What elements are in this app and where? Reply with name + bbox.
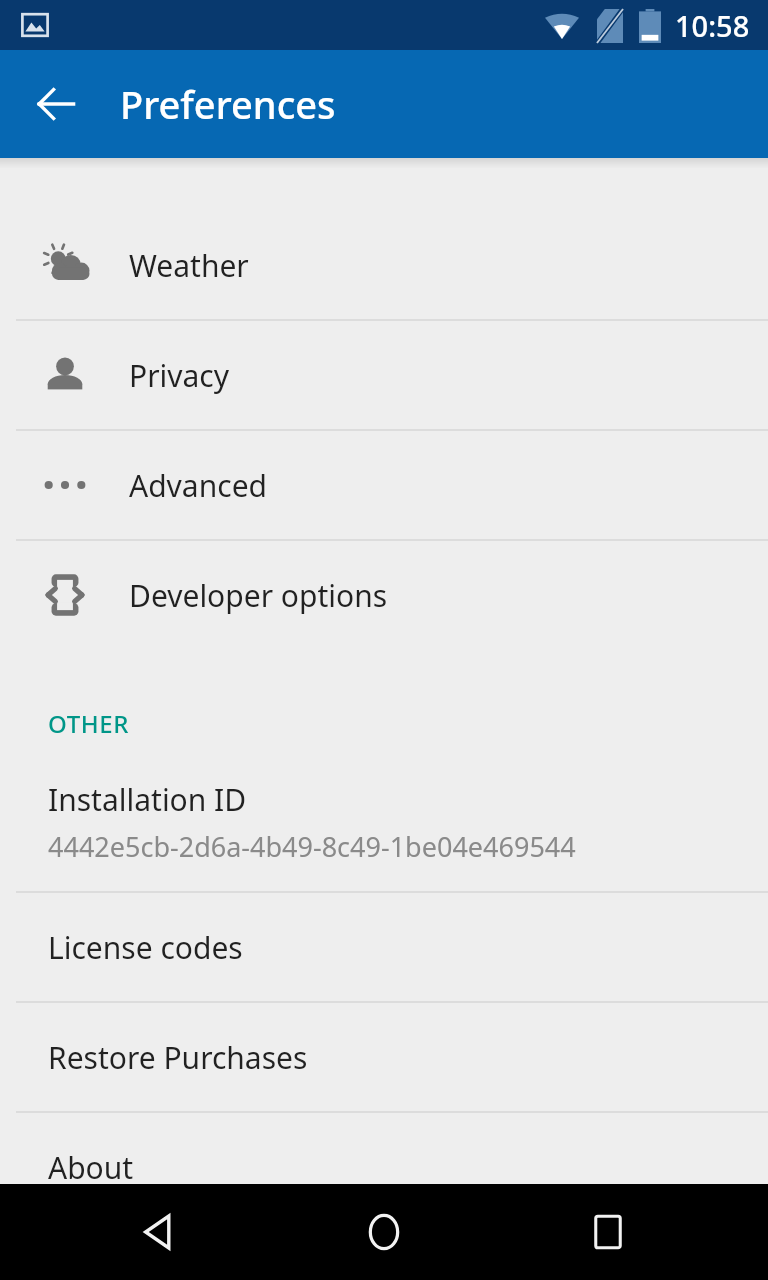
button[interactable]: License codes [0, 893, 768, 1001]
staticText: Preferences [120, 78, 336, 130]
button[interactable]: Developer options [0, 541, 768, 649]
staticText: Privacy [129, 355, 230, 396]
staticText: 10:58 [675, 6, 750, 45]
button[interactable]: Restore Purchases [0, 1003, 768, 1111]
staticText: Installation ID [48, 779, 247, 820]
staticText: OTHER [48, 707, 130, 740]
staticText: About [48, 1147, 134, 1188]
button[interactable]: Weather [0, 211, 768, 319]
staticText: Calendar views [129, 123, 341, 164]
button[interactable]: Privacy [0, 321, 768, 429]
button[interactable]: About [0, 1113, 768, 1221]
button[interactable]: Advanced [0, 431, 768, 539]
button[interactable]: Recent apps [560, 1184, 656, 1280]
staticText: Restore Purchases [48, 1037, 308, 1078]
staticText: Developer options [129, 575, 388, 616]
staticText: Weather [129, 245, 249, 286]
staticText: License codes [48, 927, 243, 968]
button[interactable]: Home [336, 1184, 432, 1280]
staticText: Advanced [129, 465, 267, 506]
staticText: 4442e5cb-2d6a-4b49-8c49-1be04e469544 [48, 828, 576, 865]
button[interactable]: Installation ID [0, 757, 768, 891]
button[interactable]: Back [112, 1184, 208, 1280]
button[interactable]: Navigate up [20, 68, 92, 140]
